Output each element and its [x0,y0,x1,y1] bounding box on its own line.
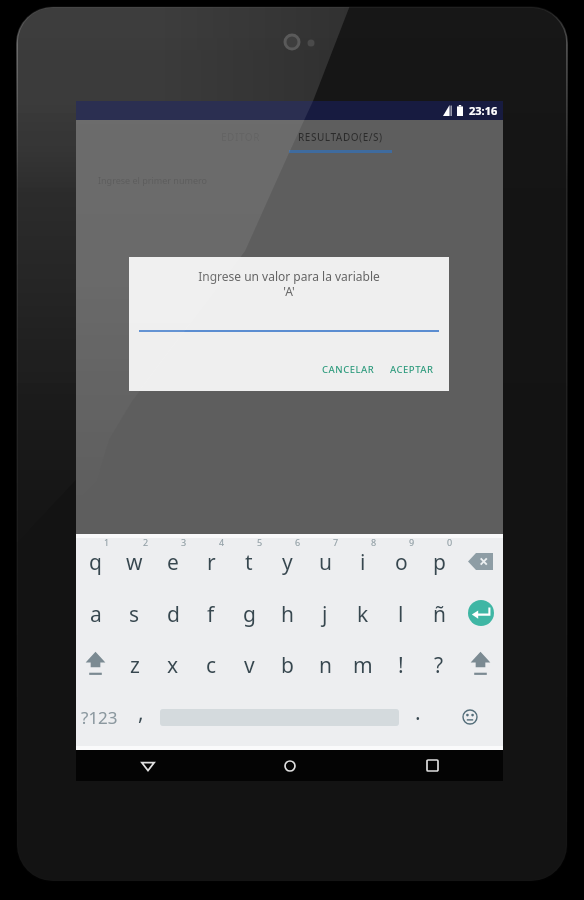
staticText: g [243,600,256,629]
button[interactable]: z [115,638,154,690]
button[interactable]: 9 [382,535,420,587]
staticText: h [281,600,294,629]
button[interactable]: m [344,638,382,690]
staticText: c [206,651,217,680]
staticText: q [89,548,102,577]
button[interactable]: Home [219,750,361,781]
staticText: z [130,651,140,680]
button[interactable]: 2 [115,535,154,587]
button[interactable]: . [399,691,437,743]
staticText: 9 [409,536,415,548]
button[interactable]: 4 [192,535,230,587]
button[interactable]: 6 [268,535,306,587]
staticText: p [433,548,446,577]
button[interactable]: j [306,587,344,639]
button[interactable]: Backspace [458,535,503,587]
staticText: n [319,651,332,680]
button[interactable]: d [154,587,192,639]
staticText: 7 [333,536,339,548]
button[interactable]: Space [160,691,399,743]
staticText: w [126,548,143,577]
staticText: i [360,548,366,577]
button[interactable]: Shift [76,638,115,690]
staticText: 6 [295,536,301,548]
button[interactable]: f [192,587,230,639]
staticText: r [207,548,216,577]
staticText: 2 [143,536,149,548]
button[interactable]: v [230,638,268,690]
staticText: o [395,548,408,577]
staticText: 4 [219,536,225,548]
button[interactable]: x [154,638,192,690]
button[interactable]: Shift [458,638,503,690]
staticText: k [357,600,369,629]
button[interactable]: 7 [306,535,344,587]
button[interactable]: c [192,638,230,690]
staticText: v [244,651,255,680]
staticText: 0 [447,536,453,548]
staticText: CANCELAR [322,363,375,376]
button[interactable]: s [115,587,154,639]
staticText: b [281,651,294,680]
staticText: . [415,698,421,727]
staticText: 8 [371,536,377,548]
button[interactable]: 3 [154,535,192,587]
staticText: e [167,548,179,577]
button[interactable]: ? [420,638,458,690]
staticText: ? [434,651,444,680]
staticText: s [129,600,140,629]
staticText: m [353,651,373,680]
staticText: d [167,600,180,629]
button[interactable]: g [230,587,268,639]
staticText: Ingrese un valor para la variable 'A' [129,268,449,299]
staticText: f [207,600,215,629]
button[interactable]: ! [382,638,420,690]
staticText: j [322,600,328,629]
staticText: RESULTADO(E/S) [298,130,383,144]
button[interactable]: 1 [76,535,115,587]
staticText: 3 [181,536,187,548]
staticText: u [319,548,332,577]
staticText: 5 [257,536,263,548]
staticText: ?123 [81,706,118,729]
button[interactable]: Back [76,750,219,781]
button[interactable]: Recents [361,750,503,781]
button[interactable]: h [268,587,306,639]
button[interactable]: Enter [458,587,503,639]
staticText: l [398,600,404,629]
staticText: 23:16 [469,103,498,118]
button[interactable]: ñ [420,587,458,639]
button[interactable]: CANCELAR [322,358,375,380]
staticText: a [90,600,102,629]
button[interactable]: l [382,587,420,639]
button[interactable]: a [76,587,115,639]
button[interactable]: 5 [230,535,268,587]
button[interactable]: b [268,638,306,690]
button[interactable]: ?123 [76,691,122,743]
button[interactable]: RESULTADO(E/S) [289,120,392,154]
button[interactable]: 0 [420,535,458,587]
staticText: 1 [104,536,110,548]
button[interactable]: 8 [344,535,382,587]
staticText: y [282,548,293,577]
staticText: Ingrese el primer numero [98,174,207,186]
button[interactable]: Emoji [437,691,503,743]
button[interactable]: n [306,638,344,690]
staticText: t [245,548,253,577]
staticText: ñ [433,600,446,629]
button[interactable]: k [344,587,382,639]
button[interactable]: , [122,691,160,743]
button[interactable]: ACEPTAR [390,358,434,380]
staticText: , [138,698,144,727]
staticText: ! [398,651,404,680]
staticText: ACEPTAR [390,363,434,376]
staticText: x [167,651,179,680]
